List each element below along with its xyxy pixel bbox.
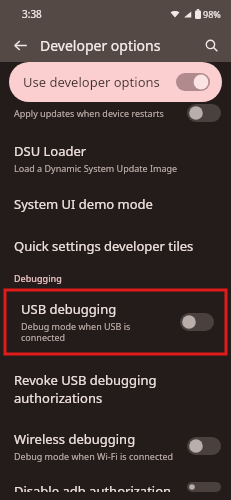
staticText: Debug mode when Wi-Fi is connected [14, 450, 174, 462]
staticText: 3:38 [22, 7, 42, 21]
staticText: DSU Loader [14, 142, 87, 160]
staticText: Apply updates when device restarts [14, 107, 164, 119]
button[interactable]: Wireless debugging [0, 422, 231, 470]
staticText: Load a Dynamic System Update Image [14, 162, 178, 174]
staticText: Wireless debugging [14, 430, 136, 448]
button[interactable]: Search [197, 31, 225, 59]
staticText: Debugging [14, 272, 62, 284]
button[interactable]: USB debugging [7, 292, 224, 352]
staticText: Use developer options [23, 73, 160, 91]
staticText: Disable adb authorization timeout [14, 482, 172, 492]
staticText: USB debugging [21, 300, 117, 318]
staticText: 98% [203, 8, 221, 20]
button[interactable]: Revoke USB debugging authorizations [0, 362, 231, 416]
button[interactable]: Back [6, 31, 34, 59]
button[interactable]: DSU Loader [0, 134, 231, 182]
staticText: System UI demo mode [14, 195, 153, 213]
button[interactable]: Disable adb authorization timeout [0, 474, 231, 500]
staticText: Quick settings developer tiles [14, 237, 194, 255]
button[interactable]: Use developer options [9, 62, 222, 102]
staticText: Debug mode when USB is connected [21, 320, 172, 344]
button[interactable]: Apply updates when device restarts [0, 104, 231, 122]
button[interactable]: Quick settings developer tiles [0, 228, 231, 264]
staticText: Developer options [40, 36, 197, 55]
button[interactable]: System UI demo mode [0, 186, 231, 222]
staticText: Revoke USB debugging authorizations [14, 371, 221, 407]
